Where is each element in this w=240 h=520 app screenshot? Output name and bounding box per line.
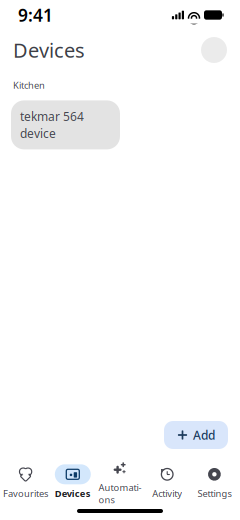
button[interactable]: Add xyxy=(164,421,228,449)
staticText: 9:41 xyxy=(18,3,53,26)
button[interactable]: Settings xyxy=(191,458,238,502)
staticText: tekmar 564 xyxy=(20,108,84,124)
staticText: Favourites xyxy=(3,487,48,500)
staticText: Add xyxy=(193,427,215,443)
button[interactable]: Automations xyxy=(96,452,144,508)
staticText: Automations xyxy=(98,481,141,506)
button[interactable]: Activity xyxy=(144,458,191,502)
button[interactable]: Account xyxy=(201,37,227,63)
button[interactable]: tekmar 564 xyxy=(11,100,120,149)
staticText: Activity xyxy=(152,487,182,500)
button[interactable]: Favourites xyxy=(2,458,49,502)
staticText: Devices xyxy=(55,487,91,500)
button[interactable]: Devices xyxy=(49,458,96,502)
staticText: Kitchen xyxy=(13,79,45,91)
staticText: Settings xyxy=(197,487,231,500)
staticText: device xyxy=(20,125,56,141)
staticText: Devices xyxy=(13,37,85,63)
